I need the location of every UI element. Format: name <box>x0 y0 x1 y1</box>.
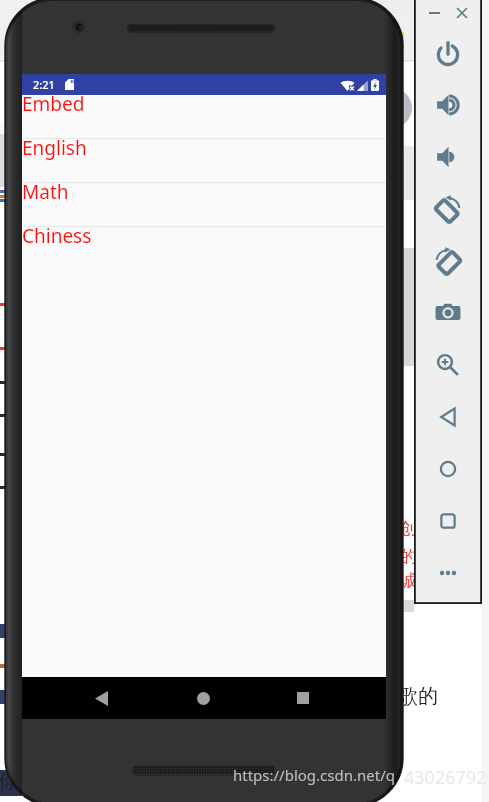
staticText: 诚 <box>400 570 417 591</box>
button[interactable]: Recents <box>282 677 324 719</box>
button[interactable]: Home <box>182 677 224 719</box>
button[interactable]: Math <box>22 183 386 227</box>
staticText: 创 <box>400 518 417 539</box>
staticText: English <box>22 135 87 161</box>
button[interactable]: Volume up <box>431 88 465 122</box>
button[interactable]: Rotate right <box>431 244 465 278</box>
button[interactable]: Zoom <box>431 348 465 382</box>
button[interactable]: Rotate left <box>431 192 465 226</box>
staticText: 的j <box>400 544 422 567</box>
button[interactable]: Embed <box>22 95 386 139</box>
staticText: 你设 <box>0 769 38 794</box>
button[interactable]: Close <box>451 2 473 24</box>
button[interactable]: Volume down <box>431 140 465 174</box>
button[interactable]: Power <box>431 36 465 70</box>
staticText: 43026792 <box>404 765 487 790</box>
button[interactable]: Home <box>431 452 465 486</box>
button[interactable]: Overview <box>431 504 465 538</box>
staticText: Chiness <box>22 223 92 249</box>
button[interactable]: Back <box>80 677 122 719</box>
staticText: 幕上就 <box>297 779 357 802</box>
staticText: 2:21 <box>33 77 55 92</box>
button[interactable]: Minimize <box>423 2 445 24</box>
button[interactable]: Chiness <box>22 227 386 271</box>
staticText: Embed <box>22 91 85 117</box>
button[interactable]: Screenshot <box>431 296 465 330</box>
staticText: https://blog.csdn.net/q <box>233 765 395 785</box>
staticText: Math <box>22 179 69 205</box>
button[interactable]: English <box>22 139 386 183</box>
button[interactable]: Back <box>431 400 465 434</box>
staticText: 歌的 <box>398 684 438 709</box>
button[interactable]: More <box>431 556 465 590</box>
